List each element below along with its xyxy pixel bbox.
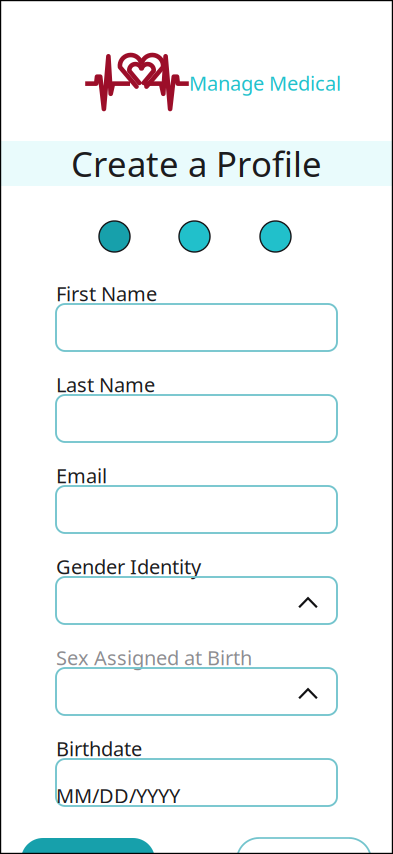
staticText: Gender Identity [56,553,201,580]
staticText: First Name [56,280,157,307]
staticText: MM/DD/YYYY [56,782,180,809]
button[interactable] [56,577,337,624]
button[interactable] [56,304,337,351]
staticText: Create a Profile [71,140,322,186]
button[interactable]: Next [237,838,371,854]
button[interactable] [56,668,337,715]
button[interactable]: Back [21,838,155,854]
button[interactable]: MM/DD/YYYY [56,759,337,806]
button[interactable] [56,486,337,533]
staticText: Birthdate [56,735,142,762]
staticText: Email [56,462,107,489]
staticText: Manage Medical [189,70,341,96]
staticText: Last Name [56,371,155,398]
button[interactable] [56,395,337,442]
staticText: Sex Assigned at Birth [56,644,252,671]
